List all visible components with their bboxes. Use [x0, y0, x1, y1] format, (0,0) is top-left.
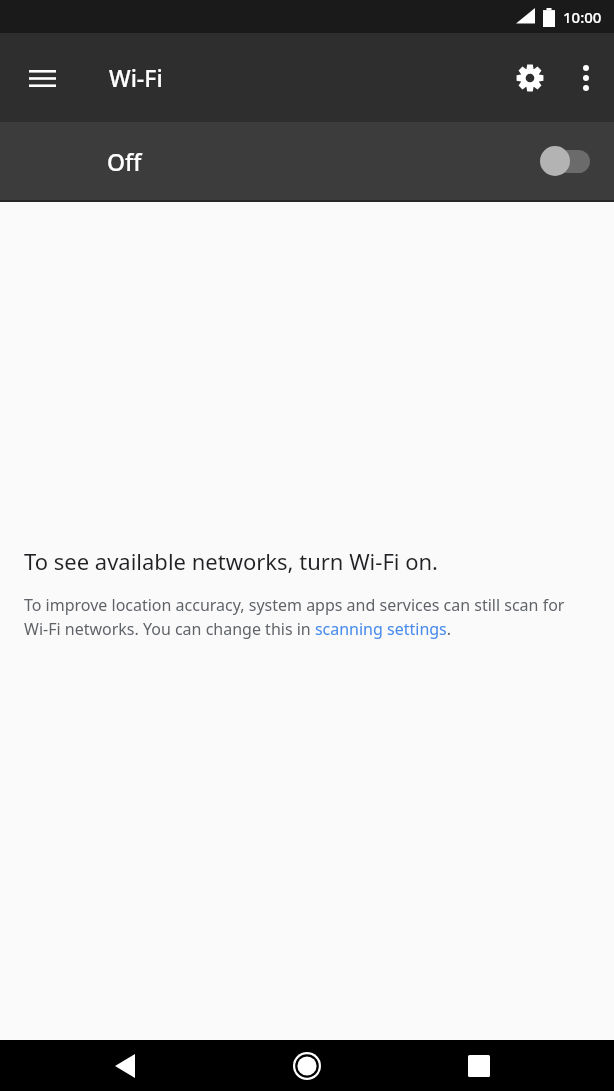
staticText: Wi-Fi: [109, 62, 163, 93]
button[interactable]: Recent apps: [457, 1044, 501, 1088]
button[interactable]: Open navigation drawer: [10, 46, 74, 110]
other: Wi-Fi toggle, off: [540, 144, 590, 178]
staticText: Off: [107, 146, 142, 177]
button[interactable]: Home: [285, 1044, 329, 1088]
staticText: To see available networks, turn Wi-Fi on…: [24, 546, 438, 576]
button[interactable]: Back: [103, 1044, 147, 1088]
button[interactable]: More options: [558, 50, 614, 106]
button[interactable]: Off: [0, 122, 614, 200]
staticText: 10:00: [563, 7, 602, 27]
staticText: To improve location accuracy, system app…: [24, 594, 590, 640]
button[interactable]: Settings: [502, 50, 558, 106]
